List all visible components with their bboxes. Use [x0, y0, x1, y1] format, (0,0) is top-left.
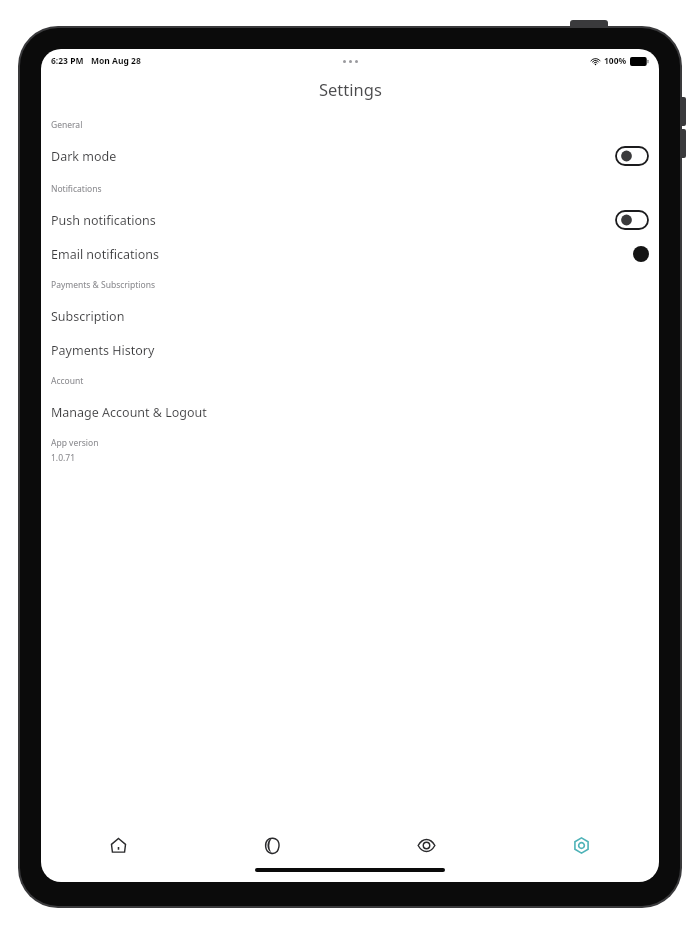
- button[interactable]: Manage Account & Logout: [51, 401, 649, 423]
- staticText: App version: [51, 437, 99, 449]
- button[interactable]: Email notifications toggle: [633, 246, 649, 262]
- button[interactable]: Settings: [504, 822, 659, 868]
- staticText: Payments History: [51, 342, 155, 359]
- staticText: Dark mode: [51, 148, 117, 165]
- button[interactable]: Contrast: [195, 822, 349, 868]
- staticText: 6:23 PM: [51, 55, 84, 67]
- staticText: General: [51, 119, 83, 131]
- staticText: Email notifications: [51, 246, 159, 263]
- button[interactable]: Toggle: [615, 210, 649, 230]
- button[interactable]: Push notifications: [51, 209, 649, 231]
- staticText: Push notifications: [51, 212, 156, 229]
- staticText: Account: [51, 375, 84, 387]
- staticText: Manage Account & Logout: [51, 404, 207, 421]
- staticText: Settings: [319, 78, 382, 100]
- button[interactable]: Dark mode: [51, 145, 649, 167]
- staticText: Notifications: [51, 183, 102, 195]
- button[interactable]: Explore: [349, 822, 504, 868]
- staticText: 1.0.71: [51, 452, 76, 464]
- staticText: 100%: [604, 55, 627, 67]
- button[interactable]: Subscription: [51, 305, 649, 327]
- staticText: Mon Aug 28: [91, 55, 141, 67]
- button[interactable]: Home: [41, 822, 195, 868]
- staticText: Subscription: [51, 308, 125, 325]
- staticText: Payments & Subscriptions: [51, 279, 155, 291]
- button[interactable]: Email notifications: [51, 243, 649, 265]
- button[interactable]: Toggle: [615, 146, 649, 166]
- button[interactable]: Payments History: [51, 339, 649, 361]
